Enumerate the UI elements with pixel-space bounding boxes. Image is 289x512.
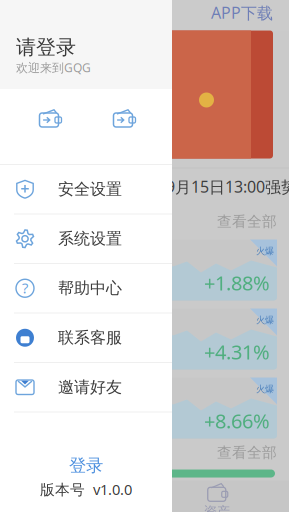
button[interactable]: 登录 — [0, 453, 172, 477]
staticText: 查看全部 — [217, 443, 277, 461]
button[interactable]: 联系客服 — [0, 313, 172, 363]
staticText: 10298.5 — [20, 270, 91, 295]
staticText: 资产 — [204, 503, 230, 512]
staticText: +8.66% — [204, 407, 270, 434]
staticText: BTC — [20, 243, 57, 269]
staticText: 联系客服 — [58, 328, 122, 348]
staticText: / USDT — [61, 247, 112, 268]
button[interactable]: ? — [0, 264, 172, 313]
staticText: 登录 — [69, 455, 103, 476]
staticText: ETH — [20, 312, 57, 338]
button[interactable]: 查看全部 — [0, 203, 289, 235]
staticText: ? — [22, 278, 28, 297]
staticText: / USDT — [62, 385, 113, 406]
staticText: 版本号 v1.0.0 — [40, 479, 132, 499]
button[interactable]: 查看全部 — [0, 438, 289, 466]
staticText: 帮助中心 — [58, 278, 122, 298]
staticText: +1.88% — [204, 269, 270, 296]
staticText: 注册送手机和1个分析师 — [30, 96, 157, 112]
button[interactable]: 邀请好友 — [0, 363, 172, 412]
button[interactable]: 充值 — [19, 94, 79, 138]
button[interactable]: 提现 — [93, 94, 153, 138]
staticText: 邀请好友 — [58, 377, 122, 397]
staticText: 查看全部 — [217, 212, 277, 230]
staticText: 火爆 — [256, 245, 274, 257]
staticText: 请登录 — [16, 35, 76, 60]
staticText: 212.43 — [20, 339, 80, 364]
button[interactable]: APP下载 — [211, 2, 273, 23]
staticText: +4.31% — [204, 338, 270, 365]
button[interactable]: 资产 — [144, 480, 289, 512]
staticText: 307.2 — [20, 461, 69, 486]
staticText: 安全设置 — [58, 179, 122, 199]
staticText: 火爆 — [256, 314, 274, 326]
staticText: GQG数字资产全球交易大赛9月15日13:00强势开启 — [0, 176, 289, 197]
staticText: APP下载 — [211, 2, 273, 23]
button[interactable]: 安全设置 — [0, 165, 172, 214]
staticText: / USDT — [61, 316, 112, 337]
button[interactable]: ¥ — [0, 480, 144, 512]
staticText: 系统设置 — [58, 229, 122, 249]
staticText: 欢迎来到GQG — [16, 60, 91, 75]
staticText: EOS — [20, 381, 58, 407]
staticText: ¥ — [68, 480, 76, 499]
staticText: 火爆 — [256, 383, 274, 395]
button[interactable]: 系统设置 — [0, 214, 172, 264]
staticText: 新人红包 — [30, 51, 154, 89]
